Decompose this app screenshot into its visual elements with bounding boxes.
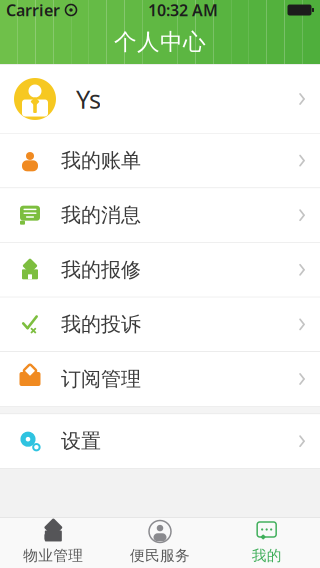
button[interactable]: 订阅管理 — [0, 352, 320, 406]
button[interactable]: Ys — [0, 65, 320, 133]
staticText: 设置 — [61, 429, 101, 453]
button[interactable]: 我的报修 — [0, 243, 320, 297]
staticText: 我的投诉 — [61, 312, 141, 337]
button[interactable]: 我的投诉 — [0, 297, 320, 351]
staticText: 我的报修 — [61, 257, 141, 282]
staticText: 物业管理 — [23, 546, 83, 564]
button[interactable]: 我的消息 — [0, 188, 320, 242]
staticText: Carrier — [6, 0, 60, 21]
staticText: 订阅管理 — [61, 367, 141, 391]
staticText: 我的账单 — [61, 148, 141, 173]
staticText: 10:32 AM — [148, 0, 218, 21]
staticText: 我的 — [252, 546, 282, 564]
staticText: 个人中心 — [114, 28, 206, 56]
staticText: Ys — [76, 82, 101, 116]
staticText: 我的消息 — [61, 203, 141, 227]
button[interactable]: 便民服务 — [107, 518, 213, 568]
button[interactable]: 我的账单 — [0, 134, 320, 188]
button[interactable]: 设置 — [0, 414, 320, 468]
button[interactable]: 物业管理 — [0, 518, 107, 568]
staticText: 便民服务 — [130, 546, 190, 564]
button[interactable]: 我的 — [213, 518, 320, 568]
